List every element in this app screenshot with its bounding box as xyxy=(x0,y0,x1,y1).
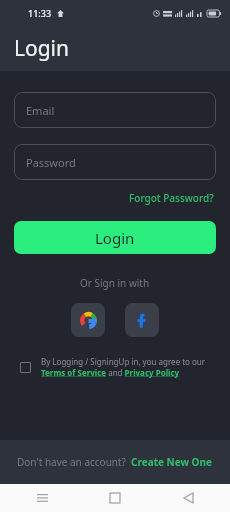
button[interactable]: Recent apps xyxy=(30,486,54,510)
button[interactable]: Home xyxy=(103,486,127,510)
staticText: Forgot Password? xyxy=(129,191,214,205)
staticText: 11:33 xyxy=(28,7,52,19)
button[interactable]: Back xyxy=(176,486,200,510)
button[interactable]: Agree to terms checkbox xyxy=(14,356,36,378)
staticText: Or Sign in with xyxy=(80,276,150,290)
button[interactable]: By Logging / SigningUp in, you agree to … xyxy=(41,356,216,378)
button[interactable]: Password xyxy=(14,144,216,180)
staticText: Login xyxy=(95,228,135,248)
staticText: Email xyxy=(26,103,55,118)
staticText: Don't have an account? xyxy=(17,455,126,469)
button[interactable]: Forgot Password? xyxy=(127,189,216,207)
staticText: Login xyxy=(14,34,70,63)
button[interactable]: Create New One xyxy=(130,454,213,470)
staticText: Create New One xyxy=(131,455,212,469)
button[interactable]: Email xyxy=(14,92,216,128)
button[interactable]: Sign in with Facebook xyxy=(125,303,159,337)
button[interactable]: Login xyxy=(14,221,216,254)
staticText: Password xyxy=(26,155,76,170)
button[interactable]: Sign in with Google xyxy=(71,303,105,337)
